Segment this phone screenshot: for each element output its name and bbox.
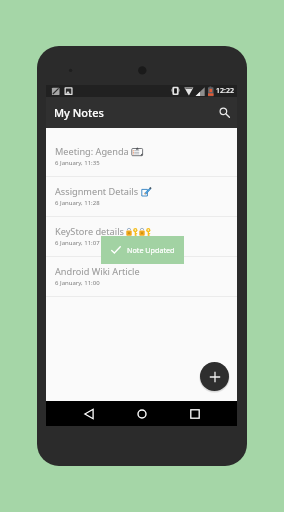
- staticText: Android Wiki Article: [55, 265, 140, 278]
- button[interactable]: KeyStore details: [46, 217, 237, 257]
- button[interactable]: Recents: [183, 402, 207, 426]
- button[interactable]: Home: [130, 402, 154, 426]
- staticText: Meeting: Agenda: [55, 145, 129, 158]
- staticText: Assignment Details: [55, 185, 139, 198]
- staticText: Note Updated: [127, 245, 175, 255]
- staticText: My Notes: [54, 105, 104, 120]
- button[interactable]: Meeting: Agenda: [46, 137, 237, 177]
- button[interactable]: Search: [214, 102, 236, 124]
- staticText: 6 January, 11:35: [55, 159, 100, 167]
- staticText: KeyStore details: [55, 225, 124, 238]
- staticText: 6 January, 11:00: [55, 279, 100, 287]
- button[interactable]: Android Wiki Article: [46, 257, 237, 297]
- staticText: 12:22: [216, 86, 234, 96]
- staticText: 6 January, 11:28: [55, 199, 100, 207]
- button[interactable]: Add note: [200, 362, 229, 391]
- staticText: 6 January, 11:07: [55, 239, 100, 247]
- button[interactable]: Assignment Details: [46, 177, 237, 217]
- button[interactable]: Back: [77, 402, 101, 426]
